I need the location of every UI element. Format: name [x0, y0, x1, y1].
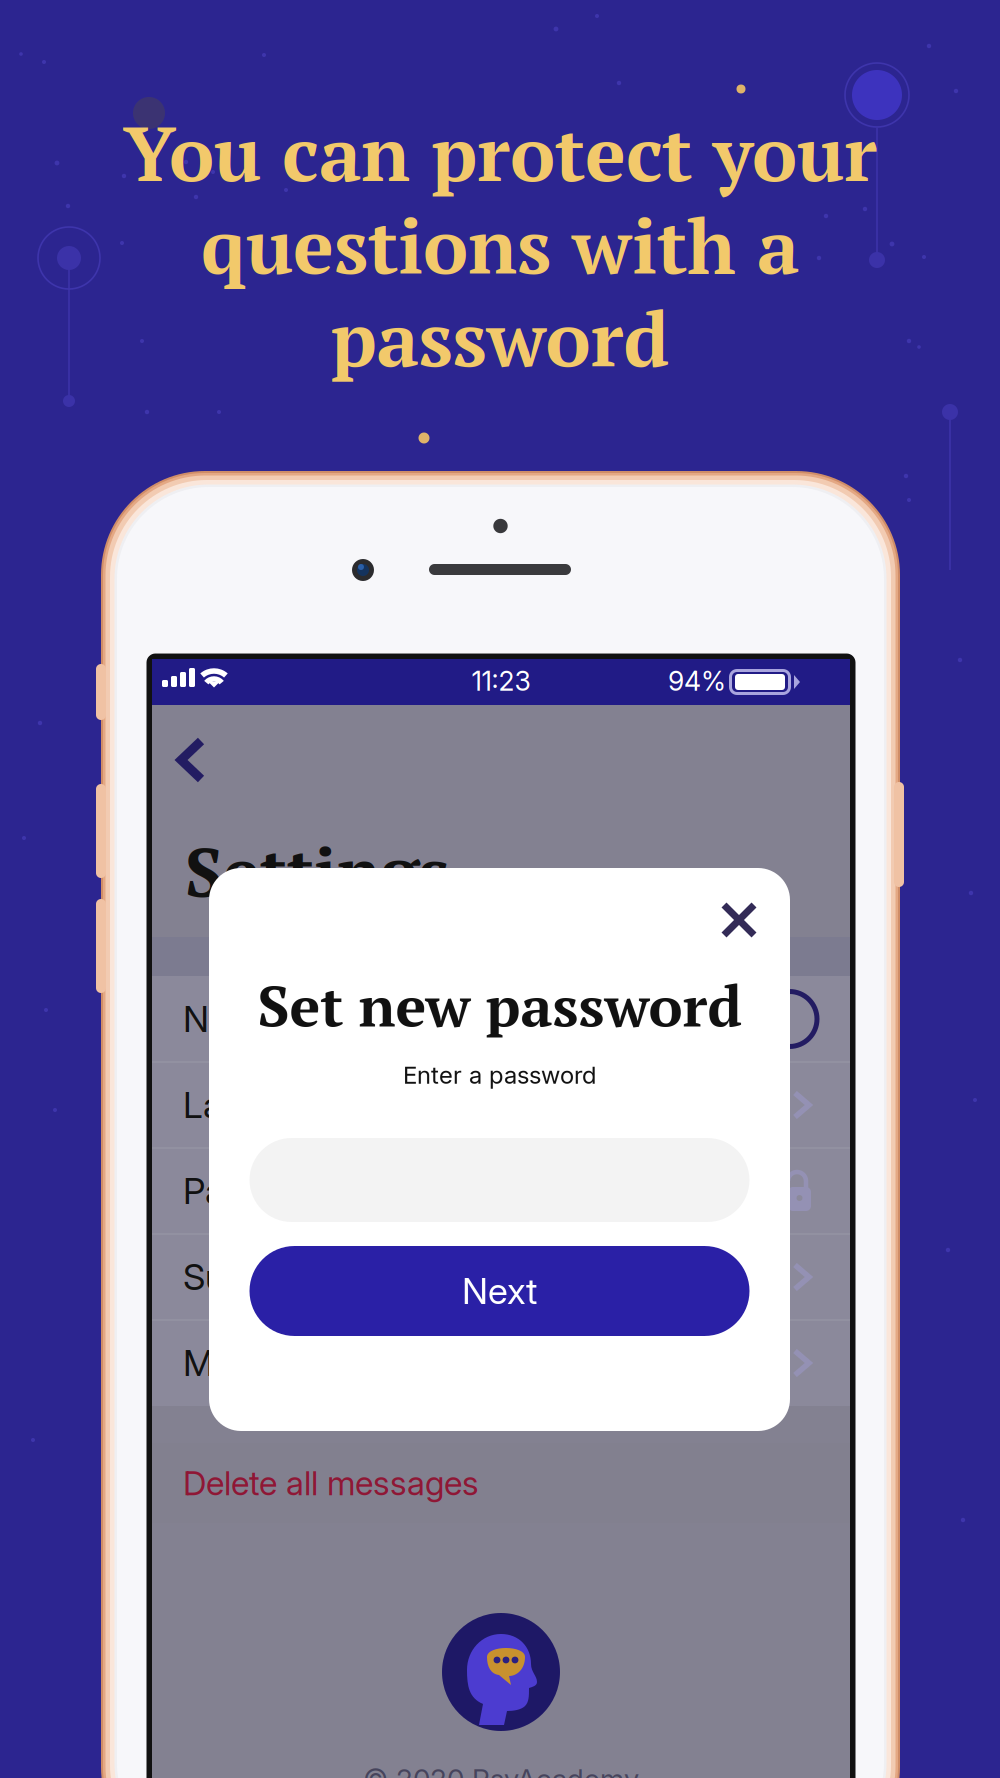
staticText: Delete all messages [183, 1463, 479, 1503]
button[interactable]: Language [152, 1062, 850, 1148]
button[interactable]: My account [152, 1320, 850, 1406]
staticText: Settings [185, 826, 450, 916]
button[interactable]: Subscription [152, 1234, 850, 1320]
staticText: 11:23 [471, 665, 530, 697]
staticText: Language [183, 1083, 343, 1127]
button[interactable]: Back [154, 720, 238, 800]
staticText: questions with a [201, 195, 799, 295]
staticText: Next [462, 1269, 537, 1313]
staticText: Notifications [183, 997, 384, 1041]
staticText: password [330, 287, 669, 388]
staticText: 94% [668, 665, 726, 697]
staticText: You can protect your [123, 102, 877, 203]
staticText: Subscription [183, 1255, 383, 1299]
staticText: Enter a password [403, 1060, 596, 1089]
staticText: My account [183, 1341, 371, 1385]
button[interactable]: Delete all messages [152, 1443, 850, 1523]
button[interactable]: Password [152, 1148, 850, 1234]
button[interactable]: Next [249, 1246, 749, 1336]
button[interactable]: Close [707, 888, 771, 952]
staticText: Password [183, 1169, 340, 1213]
button[interactable]: Notifications [152, 976, 850, 1062]
staticText: © 2020 PsyAcademy [363, 1762, 639, 1778]
staticText: Set new password [257, 967, 741, 1043]
